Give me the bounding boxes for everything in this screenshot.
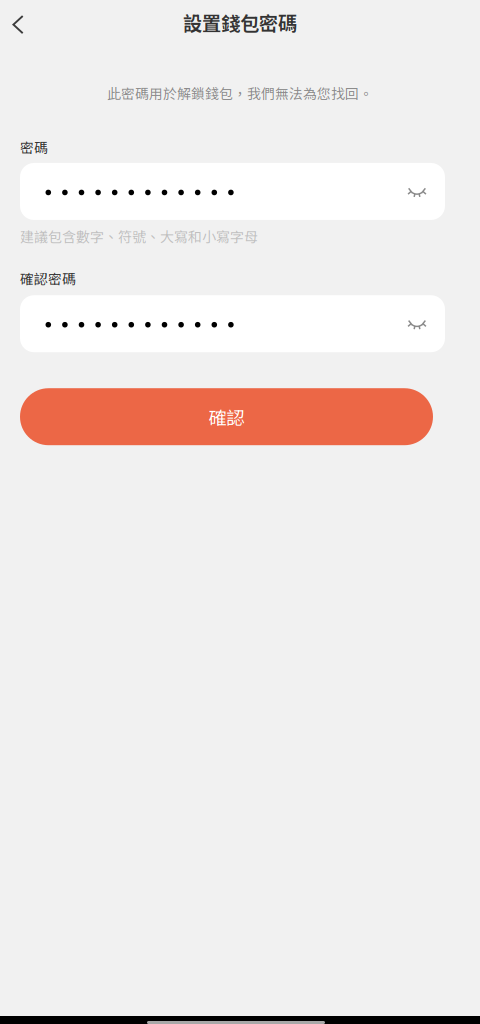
staticText: 建議包含數字、符號、大寫和小寫字母	[20, 226, 258, 246]
button[interactable]: Back	[0, 0, 44, 45]
staticText: 設置錢包密碼	[183, 9, 297, 36]
button[interactable]: 確認	[20, 388, 433, 445]
staticText: 此密碼用於解鎖錢包，我們無法為您找回。	[107, 83, 373, 103]
button[interactable]: Show password	[395, 302, 439, 346]
staticText: 密碼	[20, 137, 48, 157]
button[interactable]: Show password	[395, 169, 439, 213]
staticText: 確認	[208, 403, 244, 430]
staticText: 確認密碼	[20, 268, 76, 288]
